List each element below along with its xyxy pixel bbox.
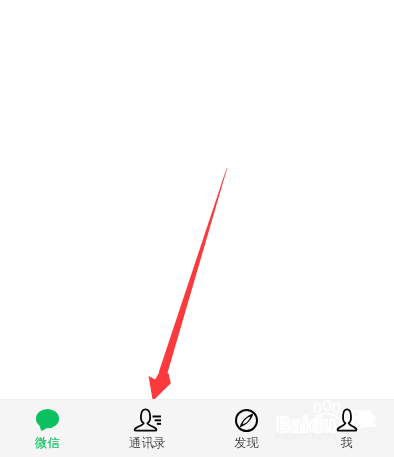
staticText: Baidu	[276, 410, 336, 439]
staticText: 微信	[35, 435, 60, 450]
staticText: Baidu	[276, 410, 336, 439]
staticText: 发现	[234, 435, 259, 450]
button[interactable]: WeChat	[0, 400, 98, 457]
staticText: 通讯录	[129, 435, 166, 450]
button[interactable]: Contacts	[98, 400, 196, 457]
staticText: 经验	[341, 409, 375, 430]
button[interactable]: Me	[295, 400, 394, 457]
button[interactable]: Discover	[196, 400, 295, 457]
staticText: jingyan.baidu.com	[275, 429, 359, 442]
staticText: 经验	[341, 409, 375, 430]
staticText: 我	[340, 435, 353, 450]
